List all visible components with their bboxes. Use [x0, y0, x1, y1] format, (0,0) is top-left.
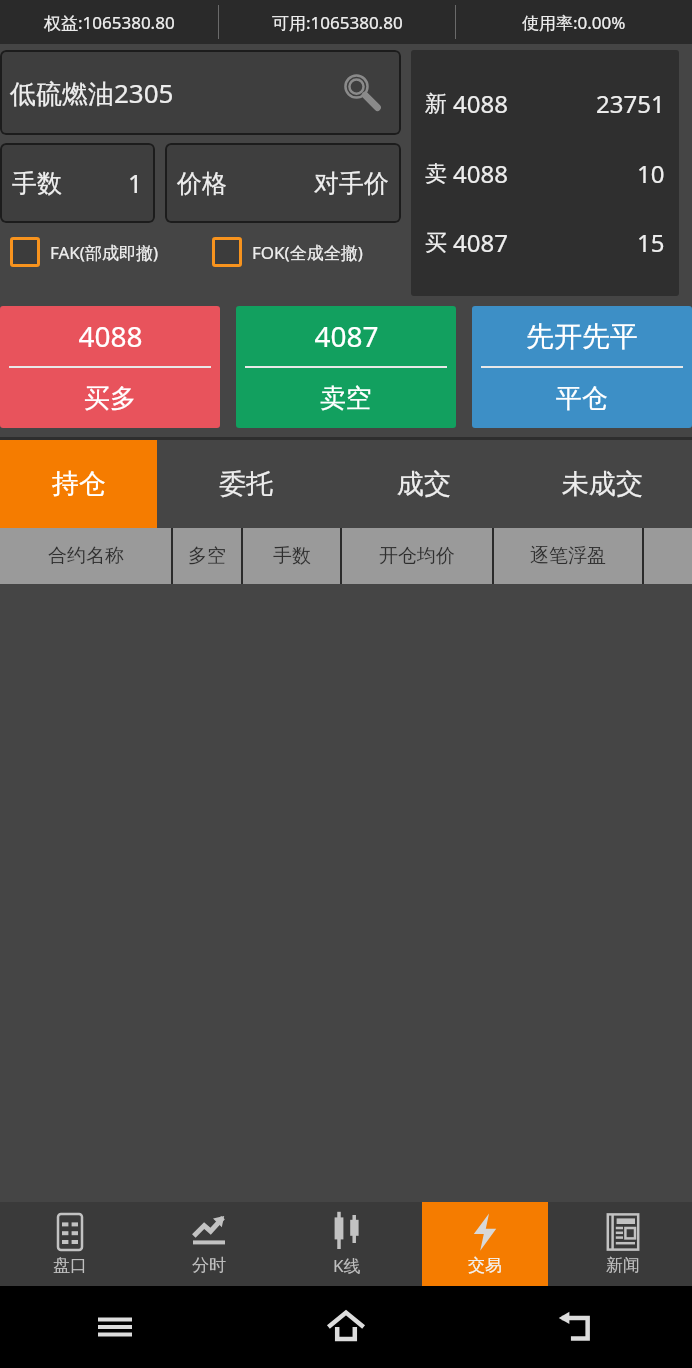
staticText: 对手价	[314, 168, 389, 199]
staticText: 权益:1065380.80	[44, 11, 175, 34]
button[interactable]: 新	[411, 50, 679, 296]
staticText: 23751	[596, 87, 665, 120]
staticText: 先开先平	[526, 319, 638, 354]
button[interactable]: 手数	[0, 143, 155, 223]
button[interactable]: 多空	[173, 528, 241, 584]
button[interactable]: 分时	[139, 1202, 278, 1286]
staticText: 开仓均价	[379, 544, 455, 568]
button[interactable]: 4087	[236, 306, 456, 428]
staticText: 新	[425, 90, 447, 118]
button[interactable]: 价格	[165, 143, 401, 223]
staticText: 平仓	[556, 382, 608, 415]
staticText: 4088	[78, 317, 143, 355]
staticText: 1	[128, 166, 143, 200]
staticText: 多空	[188, 544, 226, 568]
button[interactable]: 逐笔浮盈	[494, 528, 642, 584]
staticText: 4087	[314, 317, 379, 355]
button[interactable]: 可用:1065380.80	[219, 0, 455, 44]
staticText: 手数	[273, 544, 311, 568]
button[interactable]: Menu	[0, 1286, 230, 1368]
staticText: FOK(全成全撤)	[252, 241, 363, 264]
staticText: 4088	[453, 157, 508, 190]
staticText: 10	[637, 157, 665, 190]
staticText: 成交	[397, 467, 451, 501]
staticText: 持仓	[52, 467, 106, 501]
staticText: 卖	[425, 160, 447, 188]
button[interactable]: K线	[278, 1202, 416, 1286]
staticText: 使用率:0.00%	[522, 11, 626, 34]
staticText: 买多	[84, 382, 136, 415]
button[interactable]: 4088	[0, 306, 220, 428]
button[interactable]: 委托	[157, 440, 335, 528]
staticText: 合约名称	[48, 544, 124, 568]
staticText: 卖空	[320, 382, 372, 415]
button[interactable]: FOK(全成全撤)	[202, 237, 405, 267]
staticText: 分时	[192, 1255, 226, 1276]
button[interactable]: FAK(部成即撤)	[0, 237, 202, 267]
button[interactable]: 交易	[422, 1202, 548, 1286]
staticText: 逐笔浮盈	[530, 544, 606, 568]
staticText: 委托	[219, 467, 273, 501]
button[interactable]: 持仓	[0, 440, 157, 528]
button[interactable]: 权益:1065380.80	[0, 0, 218, 44]
staticText: 低硫燃油2305	[10, 75, 174, 111]
staticText: 4087	[453, 226, 508, 259]
button[interactable]: Home	[230, 1286, 461, 1368]
button[interactable]: 低硫燃油2305	[0, 50, 401, 135]
button[interactable]: 新闻	[554, 1202, 692, 1286]
button[interactable]: 合约名称	[0, 528, 171, 584]
staticText: 可用:1065380.80	[272, 11, 403, 34]
button[interactable]: 开仓均价	[342, 528, 492, 584]
button[interactable]: 未成交	[513, 440, 692, 528]
staticText: FAK(部成即撤)	[50, 241, 159, 264]
staticText: 未成交	[562, 467, 643, 501]
button[interactable]: 使用率:0.00%	[456, 0, 692, 44]
button[interactable]: 先开先平	[472, 306, 692, 428]
button[interactable]: 盘口	[0, 1202, 139, 1286]
button[interactable]: Back	[461, 1286, 692, 1368]
button[interactable]: 手数	[243, 528, 340, 584]
other: Search contract	[339, 70, 385, 116]
staticText: 买	[425, 229, 447, 257]
staticText: 15	[637, 226, 665, 259]
staticText: K线	[333, 1254, 361, 1277]
staticText: 新闻	[606, 1255, 640, 1276]
staticText: 价格	[177, 168, 227, 199]
button[interactable]: 成交	[335, 440, 513, 528]
staticText: 盘口	[53, 1255, 87, 1276]
staticText: 手数	[12, 168, 62, 199]
staticText: 交易	[468, 1255, 502, 1276]
staticText: 4088	[453, 87, 508, 120]
